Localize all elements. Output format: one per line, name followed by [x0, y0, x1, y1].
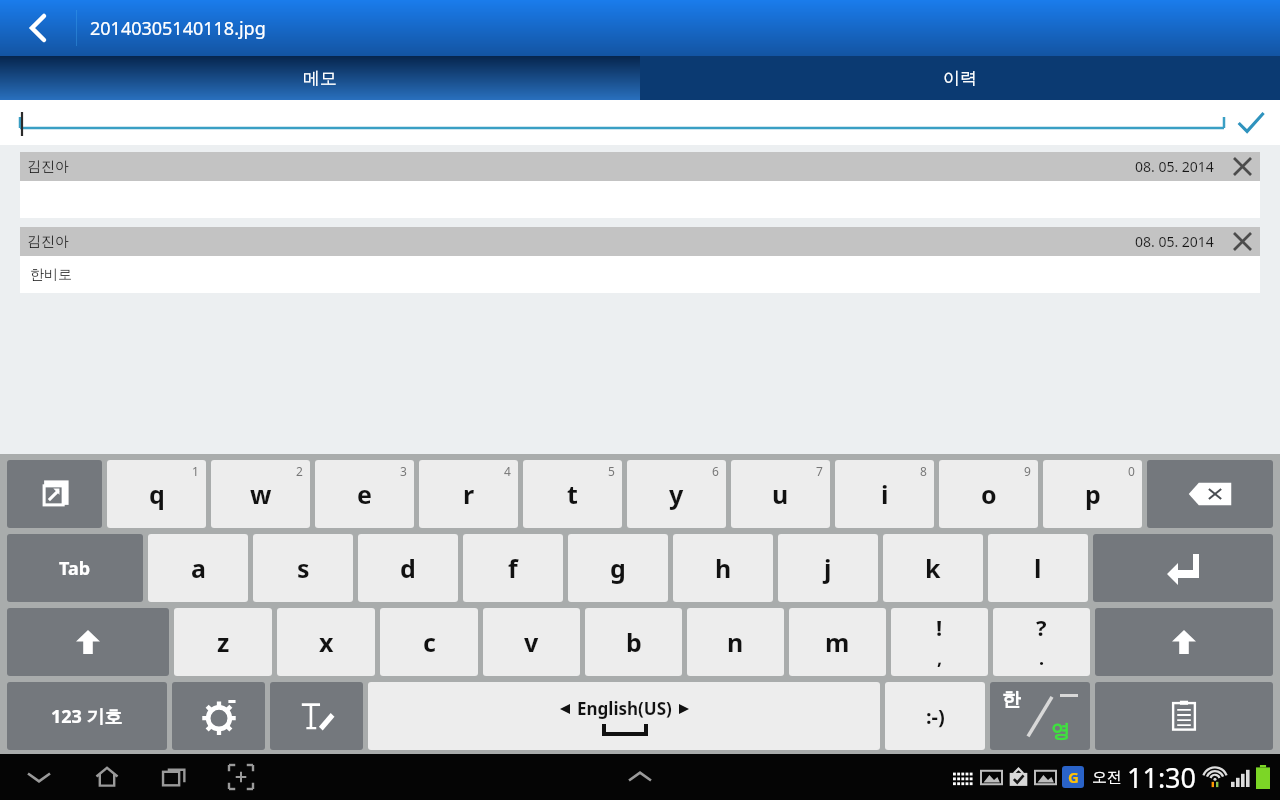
- staticText: 8: [920, 463, 927, 479]
- button[interactable]: e: [315, 460, 414, 528]
- button[interactable]: 123 기호: [7, 682, 167, 750]
- button[interactable]: a: [148, 534, 248, 602]
- button[interactable]: Shift: [1095, 608, 1273, 676]
- staticText: 한비로: [30, 266, 72, 284]
- button[interactable]: x: [277, 608, 375, 676]
- button[interactable]: Handwriting: [270, 682, 363, 750]
- button[interactable]: w: [211, 460, 310, 528]
- staticText: q: [149, 477, 165, 511]
- button[interactable]: q: [107, 460, 206, 528]
- staticText: a: [191, 551, 206, 585]
- button[interactable]: s: [253, 534, 353, 602]
- button[interactable]: p: [1043, 460, 1142, 528]
- button[interactable]: Save memo: [1222, 100, 1280, 145]
- staticText: c: [423, 625, 436, 659]
- button[interactable]: :-): [885, 682, 985, 750]
- staticText: z: [217, 625, 230, 659]
- button[interactable]: 이력: [640, 56, 1280, 100]
- staticText: 11:30: [1127, 759, 1197, 796]
- button[interactable]: g: [568, 534, 668, 602]
- staticText: b: [626, 625, 642, 659]
- button[interactable]: b: [585, 608, 682, 676]
- button[interactable]: Hide keyboard: [16, 754, 62, 800]
- button[interactable]: Backspace: [1147, 460, 1273, 528]
- button[interactable]: 김진아: [20, 227, 1260, 293]
- staticText: 6: [712, 463, 719, 479]
- button[interactable]: i: [835, 460, 934, 528]
- button[interactable]: n: [687, 608, 784, 676]
- staticText: p: [1085, 477, 1101, 511]
- button[interactable]: l: [988, 534, 1088, 602]
- staticText: e: [357, 477, 372, 511]
- button[interactable]: Expand: [614, 754, 666, 800]
- button[interactable]: t: [523, 460, 622, 528]
- staticText: g: [610, 551, 626, 585]
- staticText: 4: [504, 463, 511, 479]
- button[interactable]: f: [463, 534, 563, 602]
- staticText: 123 기호: [51, 704, 123, 729]
- button[interactable]: ?: [993, 608, 1090, 676]
- button[interactable]: c: [380, 608, 478, 676]
- button[interactable]: 김진아: [20, 152, 1260, 218]
- staticText: 3: [400, 463, 407, 479]
- staticText: 이력: [943, 68, 977, 89]
- staticText: v: [524, 625, 539, 659]
- staticText: o: [981, 477, 997, 511]
- staticText: n: [727, 625, 744, 659]
- staticText: 2: [296, 463, 303, 479]
- button[interactable]: k: [883, 534, 983, 602]
- button[interactable]: Back: [0, 0, 76, 56]
- staticText: m: [825, 625, 850, 659]
- button[interactable]: u: [731, 460, 830, 528]
- button[interactable]: 메모: [0, 56, 640, 100]
- button[interactable]: !: [891, 608, 988, 676]
- staticText: y: [669, 477, 684, 511]
- button[interactable]: Settings: [172, 682, 265, 750]
- button[interactable]: Shortcut: [7, 460, 102, 528]
- button[interactable]: Screenshot: [218, 754, 264, 800]
- button[interactable]: r: [419, 460, 518, 528]
- button[interactable]: Clipboard: [1095, 682, 1273, 750]
- staticText: :-): [926, 703, 945, 730]
- button[interactable]: j: [778, 534, 878, 602]
- staticText: h: [715, 551, 732, 585]
- staticText: English(US): [577, 697, 672, 720]
- button[interactable]: o: [939, 460, 1038, 528]
- staticText: 5: [608, 463, 615, 479]
- button[interactable]: d: [358, 534, 458, 602]
- staticText: s: [297, 551, 310, 585]
- staticText: r: [463, 477, 475, 511]
- button[interactable]: Recents: [152, 754, 198, 800]
- staticText: l: [1034, 551, 1042, 585]
- staticText: 김진아: [27, 233, 69, 251]
- staticText: .: [1039, 646, 1045, 671]
- button[interactable]: Shift: [7, 608, 169, 676]
- button[interactable]: y: [627, 460, 726, 528]
- button[interactable]: Tab: [7, 534, 143, 602]
- button[interactable]: m: [789, 608, 886, 676]
- staticText: w: [250, 477, 272, 511]
- staticText: u: [772, 477, 789, 511]
- button[interactable]: Home: [84, 754, 130, 800]
- staticText: 08. 05. 2014: [1135, 157, 1214, 176]
- staticText: 1: [192, 463, 199, 479]
- staticText: ?: [1036, 612, 1047, 642]
- button[interactable]: Delete memo: [1224, 227, 1260, 256]
- staticText: x: [319, 625, 334, 659]
- staticText: f: [508, 551, 518, 585]
- staticText: Tab: [59, 556, 91, 581]
- button[interactable]: Delete memo: [1224, 152, 1260, 181]
- button[interactable]: Language toggle Korean English: [990, 682, 1090, 750]
- staticText: d: [400, 551, 416, 585]
- button[interactable]: Space: [368, 682, 880, 750]
- staticText: 0: [1128, 463, 1135, 479]
- button[interactable]: Enter: [1093, 534, 1273, 602]
- staticText: 7: [816, 463, 823, 479]
- button[interactable]: v: [483, 608, 580, 676]
- button[interactable]: h: [673, 534, 773, 602]
- staticText: 김진아: [27, 158, 69, 176]
- staticText: G: [1068, 767, 1079, 787]
- staticText: 20140305140118.jpg: [90, 16, 266, 41]
- staticText: ,: [937, 646, 943, 671]
- button[interactable]: z: [174, 608, 272, 676]
